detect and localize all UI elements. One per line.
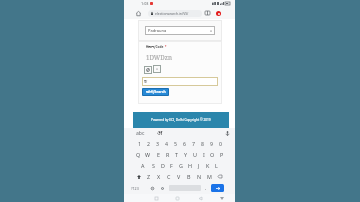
button[interactable]: C (164, 171, 174, 182)
button[interactable]: X (154, 171, 164, 182)
button[interactable]: Recents (150, 194, 162, 202)
button[interactable]: A (138, 160, 148, 171)
button[interactable]: अ (153, 128, 167, 138)
button[interactable]: 6 (180, 138, 189, 149)
button[interactable]: K (203, 160, 212, 171)
staticText: Y (184, 151, 188, 158)
staticText: N (197, 173, 202, 180)
staticText: K (206, 162, 210, 169)
staticText: L (215, 162, 218, 169)
staticText: 9 (210, 140, 213, 147)
staticText: U (193, 151, 197, 158)
staticText: I (203, 151, 205, 158)
button[interactable]: M (204, 171, 214, 182)
button[interactable]: Home (171, 194, 183, 202)
button[interactable]: 3 (153, 138, 162, 149)
staticText: electionsearch.in/VS/ (155, 11, 189, 16)
button[interactable]: O (208, 149, 217, 160)
staticText: Q (136, 151, 141, 158)
button[interactable]: V (174, 171, 184, 182)
button[interactable]: Backspace (214, 171, 226, 182)
staticText: O (210, 151, 215, 158)
staticText: C (167, 173, 171, 180)
staticText: M (207, 173, 212, 180)
staticText: Padrauna (148, 28, 167, 33)
button[interactable]: J (194, 160, 203, 171)
staticText: ?123 (131, 186, 139, 191)
button[interactable]: E (153, 149, 163, 160)
button[interactable]: U (190, 149, 199, 160)
button[interactable]: Settings (157, 182, 167, 194)
staticText: . (205, 185, 207, 192)
button[interactable]: 7 (189, 138, 198, 149)
button[interactable]: R (163, 149, 172, 160)
button[interactable]: L (212, 160, 221, 171)
button[interactable]: D (158, 160, 167, 171)
button[interactable]: Padrauna (145, 26, 215, 35)
staticText: 1:03 (141, 1, 149, 6)
staticText: B (187, 173, 191, 180)
button[interactable]: Refresh captcha (144, 66, 152, 74)
button[interactable]: 1 (134, 138, 144, 149)
staticText: S (152, 162, 155, 169)
button[interactable]: 5 (171, 138, 180, 149)
button[interactable]: electionsearch.in/VS/ (148, 10, 202, 17)
button[interactable]: Back (194, 194, 206, 202)
button[interactable]: Enter (211, 184, 224, 192)
staticText: R (166, 151, 170, 158)
staticText: * (164, 45, 167, 49)
button[interactable]: Shift (133, 171, 144, 182)
button[interactable]: 0 (216, 138, 225, 149)
button[interactable]: F (167, 160, 176, 171)
staticText: Z (147, 173, 151, 180)
button[interactable]: . (202, 182, 210, 194)
button[interactable]: 4 (162, 138, 171, 149)
staticText: V (177, 173, 181, 180)
button[interactable]: Account (213, 7, 224, 19)
button[interactable]: ?123 (129, 182, 140, 194)
button[interactable]: क (142, 77, 218, 86)
staticText: 6 (183, 140, 186, 147)
staticText: 2 (147, 140, 150, 147)
button[interactable]: Tabs (202, 7, 212, 19)
button[interactable]: W (143, 149, 153, 160)
button[interactable]: खोजें/Search (142, 88, 169, 96)
staticText: विधान/Code (146, 45, 164, 49)
button[interactable]: I (199, 149, 208, 160)
button[interactable]: P (217, 149, 226, 160)
button[interactable]: Emoji (147, 182, 157, 194)
staticText: Powered by ECI, Delhi Copyright © 2019 (151, 118, 211, 122)
button[interactable]: H (185, 160, 194, 171)
button[interactable]: Y (181, 149, 190, 160)
staticText: D (161, 162, 165, 169)
button[interactable]: Z (144, 171, 154, 182)
staticText: E (157, 151, 160, 158)
staticText: P (220, 151, 224, 158)
staticText: 4 (165, 140, 168, 147)
button[interactable]: Home (133, 7, 143, 19)
staticText: खोजें/Search (146, 90, 166, 94)
button[interactable]: B (184, 171, 194, 182)
button[interactable]: Hide keyboard (216, 194, 228, 202)
staticText: F (170, 162, 173, 169)
button[interactable]: Q (133, 149, 143, 160)
button[interactable]: G (176, 160, 185, 171)
button[interactable]: Play audio (153, 65, 161, 73)
staticText: abc (136, 130, 145, 137)
button[interactable]: N (194, 171, 204, 182)
staticText: अ (157, 129, 163, 138)
staticText: 5 (174, 140, 177, 147)
button[interactable]: 2 (144, 138, 153, 149)
staticText: 7 (192, 140, 195, 147)
staticText: 3 (156, 140, 159, 147)
button[interactable]: abc (133, 128, 147, 138)
button[interactable]: T (172, 149, 181, 160)
staticText: 8 (201, 140, 204, 147)
button[interactable]: S (148, 160, 158, 171)
button[interactable]: 8 (198, 138, 207, 149)
staticText: A (141, 162, 145, 169)
button[interactable]: Voice input (223, 129, 231, 137)
staticText: 1DWDzn (146, 53, 172, 61)
button[interactable]: 9 (207, 138, 216, 149)
